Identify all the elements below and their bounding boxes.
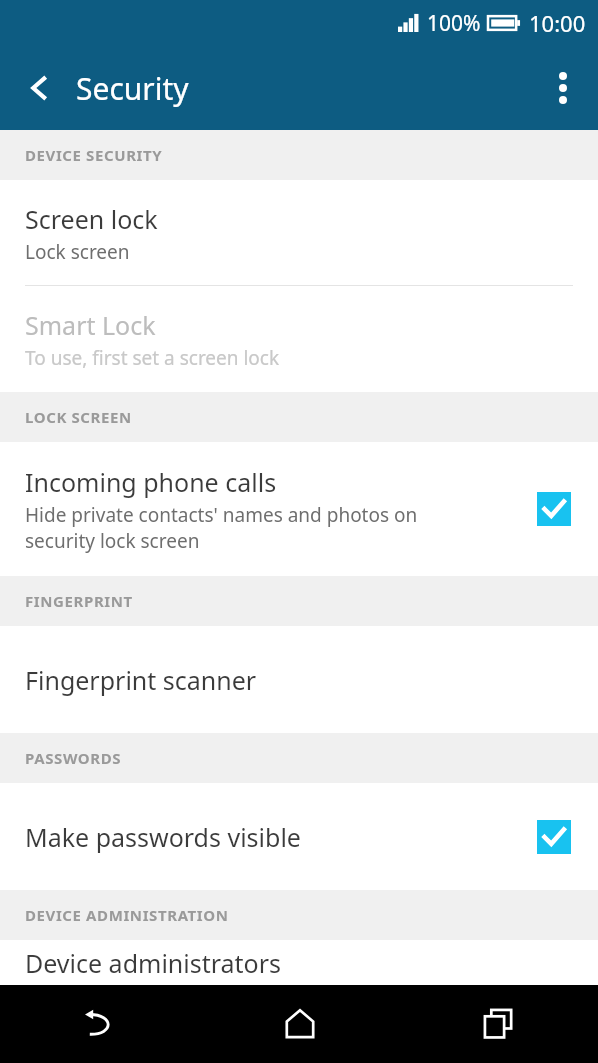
staticText: Screen lock <box>25 202 158 236</box>
button[interactable]: Back <box>12 60 68 116</box>
staticText: FINGERPRINT <box>25 591 133 611</box>
button[interactable]: Home <box>200 985 399 1063</box>
staticText: Security <box>76 68 189 109</box>
button[interactable]: Smart Lock <box>0 286 598 392</box>
button[interactable]: Make passwords visible <box>0 783 598 890</box>
staticText: Lock screen <box>25 239 130 265</box>
staticText: Device administrators <box>25 946 282 980</box>
staticText: To use, first set a screen lock <box>25 345 280 371</box>
staticText: Smart Lock <box>25 308 156 342</box>
staticText: LOCK SCREEN <box>25 407 132 427</box>
staticText: Fingerprint scanner <box>25 663 257 697</box>
button[interactable]: More options <box>534 59 592 117</box>
button[interactable]: Recent apps <box>399 985 598 1063</box>
staticText: DEVICE SECURITY <box>25 145 163 165</box>
staticText: 100% <box>427 9 481 38</box>
staticText: Incoming phone calls <box>25 465 277 499</box>
staticText: 10:00 <box>529 8 586 38</box>
staticText: PASSWORDS <box>25 748 122 768</box>
button[interactable]: Fingerprint scanner <box>0 626 598 733</box>
staticText: DEVICE ADMINISTRATION <box>25 905 229 925</box>
button[interactable]: Incoming phone calls <box>0 442 598 576</box>
button[interactable]: Back <box>0 985 200 1063</box>
button[interactable]: Screen lock <box>0 180 598 286</box>
staticText: Hide private contacts' names and photos … <box>25 502 418 553</box>
button[interactable]: Device administrators <box>0 940 598 985</box>
staticText: Make passwords visible <box>25 820 301 854</box>
